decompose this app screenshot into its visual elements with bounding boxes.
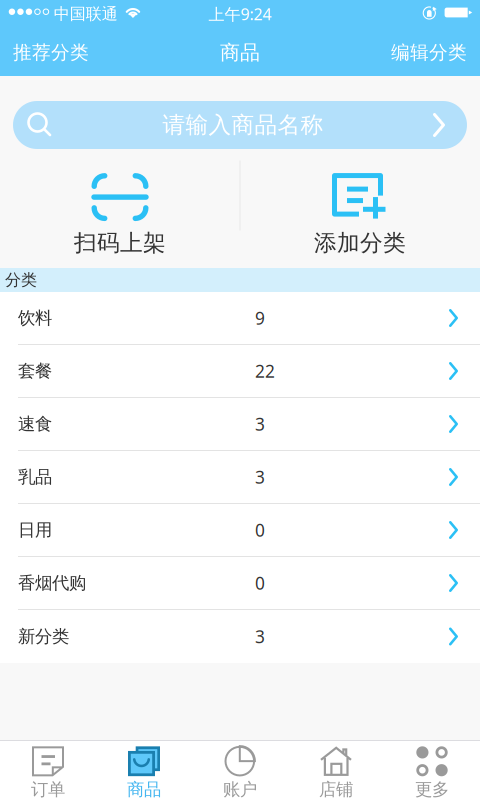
button[interactable]: 添加分类 (240, 149, 480, 268)
staticText: 香烟代购 (18, 572, 86, 594)
button[interactable]: 编辑分类 (378, 33, 480, 72)
staticText: 分类 (5, 270, 37, 290)
staticText: 乳品 (18, 466, 52, 488)
staticText: 账户 (223, 779, 257, 800)
staticText: 店铺 (319, 779, 353, 800)
button[interactable]: 香烟代购 (0, 557, 480, 610)
staticText: 0 (255, 571, 265, 594)
staticText: 3 (255, 465, 265, 488)
staticText: 推荐分类 (13, 41, 89, 64)
button[interactable]: 订单 (0, 740, 96, 800)
button[interactable]: 店铺 (288, 740, 384, 800)
staticText: 中国联通 (54, 4, 118, 24)
button[interactable]: 新分类 (0, 610, 480, 663)
staticText: 请输入商品名称 (162, 111, 323, 139)
staticText: 饮料 (18, 307, 52, 329)
button[interactable]: 乳品 (0, 451, 480, 504)
staticText: 上午9:24 (208, 3, 271, 25)
staticText: 22 (255, 359, 275, 382)
staticText: 添加分类 (314, 229, 406, 257)
button[interactable]: 套餐 (0, 345, 480, 398)
staticText: 3 (255, 412, 265, 435)
staticText: 日用 (18, 519, 52, 541)
button[interactable]: 推荐分类 (0, 33, 102, 72)
button[interactable]: 扫码上架 (0, 149, 240, 268)
button[interactable]: 日用 (0, 504, 480, 557)
staticText: 更多 (415, 779, 449, 800)
staticText: 9 (255, 306, 265, 329)
staticText: 编辑分类 (391, 41, 467, 64)
button[interactable]: 请输入商品名称 (13, 101, 467, 149)
staticText: 订单 (31, 779, 65, 800)
button[interactable]: 更多 (384, 740, 480, 800)
staticText: 新分类 (18, 626, 69, 647)
button[interactable]: 商品 (96, 740, 192, 800)
staticText: 0 (255, 518, 265, 541)
staticText: 扫码上架 (74, 229, 166, 257)
button[interactable]: 速食 (0, 398, 480, 451)
staticText: 商品 (127, 779, 161, 800)
button[interactable]: 饮料 (0, 292, 480, 345)
button[interactable]: 账户 (192, 740, 288, 800)
staticText: 套餐 (18, 360, 52, 382)
staticText: 3 (255, 625, 265, 648)
staticText: 商品 (220, 40, 260, 65)
staticText: 速食 (18, 413, 52, 435)
